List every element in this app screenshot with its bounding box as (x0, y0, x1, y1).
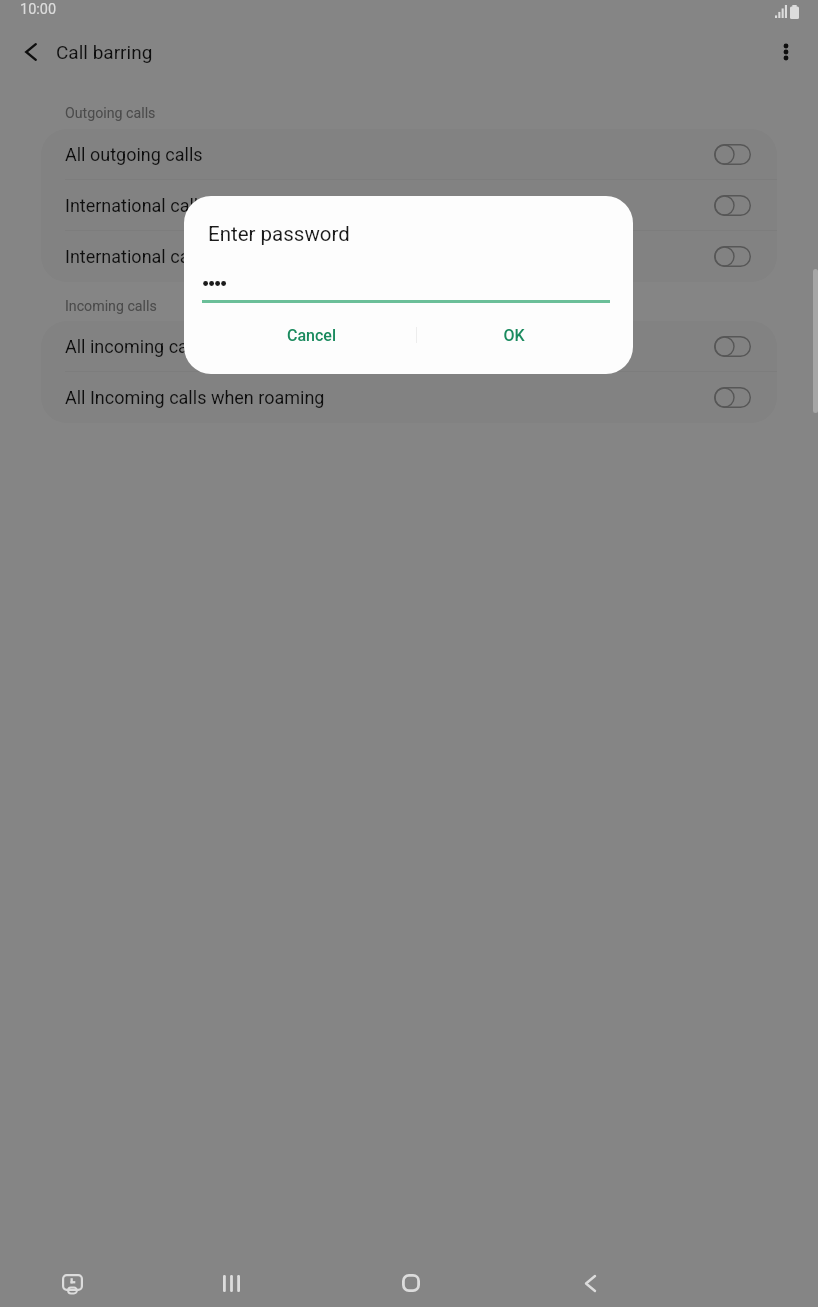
button[interactable]: Hide keyboard (50, 1261, 94, 1305)
button[interactable]: More options (760, 26, 812, 78)
staticText: All outgoing calls (65, 144, 714, 165)
staticText: Enter password (208, 222, 350, 246)
button[interactable]: International calls (41, 180, 777, 231)
staticText: Incoming calls (65, 298, 157, 315)
button[interactable]: Recent apps (209, 1261, 253, 1305)
staticText: International calls (65, 195, 714, 216)
staticText: OK (503, 326, 525, 345)
staticText: 10:00 (20, 1, 57, 18)
staticText: All Incoming calls when roaming (65, 387, 714, 408)
button[interactable]: All incoming calls (41, 321, 777, 372)
staticText: All incoming calls (65, 336, 714, 357)
staticText: Cancel (287, 326, 336, 345)
button[interactable]: International calls except to home (41, 231, 777, 282)
button[interactable]: Cancel (225, 314, 397, 356)
button[interactable]: All outgoing calls (41, 129, 777, 180)
button[interactable]: All Incoming calls when roaming (41, 372, 777, 423)
button[interactable]: Home (389, 1261, 433, 1305)
button[interactable]: Back (568, 1261, 612, 1305)
staticText: Call barring (56, 41, 153, 63)
staticText: Outgoing calls (65, 105, 156, 122)
staticText: International calls except to home (65, 246, 714, 267)
button[interactable]: Navigate up (7, 26, 55, 78)
button[interactable]: OK (428, 314, 600, 356)
